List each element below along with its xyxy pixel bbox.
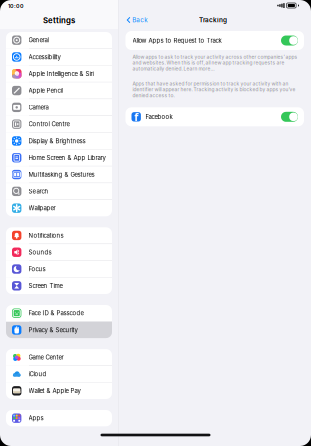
button[interactable]: Control Centre [6,116,112,132]
button[interactable]: Screen Time [6,278,112,294]
button[interactable]: Back [124,14,149,26]
staticText: Apps that have asked for permission to t… [132,81,295,98]
button[interactable]: General [6,32,112,48]
button[interactable]: f [125,107,304,126]
button[interactable]: Display & Brightness [6,133,112,149]
staticText: Wallpaper [29,204,56,212]
staticText: Display & Brightness [29,137,86,145]
staticText: Camera [29,104,49,111]
staticText: 10:00 [8,3,24,9]
staticText: Tracking [199,16,227,24]
staticText: Allow apps to ask to track your activity… [132,54,297,72]
staticText: Notifications [29,232,64,239]
button[interactable]: Apple Intelligence & Siri [6,66,112,82]
staticText: f [134,110,138,124]
button[interactable]: Camera [6,99,112,115]
staticText: Focus [29,265,46,273]
button[interactable]: Toggle [281,35,298,45]
staticText: Allow Apps to Request to Track [132,37,221,44]
staticText: Game Center [29,354,64,361]
staticText: Apple Intelligence & Siri [29,70,94,77]
staticText: Privacy & Security [29,326,78,334]
staticText: Search [29,188,49,195]
staticText: Wallet & Apple Pay [29,387,81,394]
staticText: Sounds [29,249,52,256]
staticText: Apple Pencil [29,87,63,94]
staticText: Facebook [145,113,172,120]
staticText: General [29,36,49,44]
staticText: Back [132,16,147,24]
button[interactable]: Apple Pencil [6,82,112,99]
button[interactable]: Toggle [281,112,298,122]
staticText: iCloud [29,370,47,378]
staticText: Apps [29,414,44,422]
staticText: Control Centre [29,120,70,128]
staticText: Accessibility [29,53,61,61]
button[interactable]: Wallet & Apple Pay [6,383,112,399]
button[interactable]: Privacy & Security [6,322,112,338]
staticText: Settings [43,16,75,25]
staticText: Screen Time [29,282,63,289]
staticText: Face ID & Passcode [29,309,84,317]
button[interactable]: Sounds [6,244,112,260]
button[interactable]: Face ID & Passcode [6,305,112,321]
button[interactable]: Search [6,183,112,199]
button[interactable]: Multitasking & Gestures [6,166,112,183]
button[interactable]: iCloud [6,366,112,382]
button[interactable]: Notifications [6,227,112,244]
staticText: Home Screen & App Library [29,154,106,161]
button[interactable]: Apps [6,410,112,426]
button[interactable]: Game Center [6,349,112,365]
button[interactable]: Accessibility [6,49,112,65]
button[interactable]: Wallpaper [6,200,112,216]
staticText: Multitasking & Gestures [29,171,95,178]
button[interactable]: Focus [6,261,112,277]
button[interactable]: Home Screen & App Library [6,150,112,166]
